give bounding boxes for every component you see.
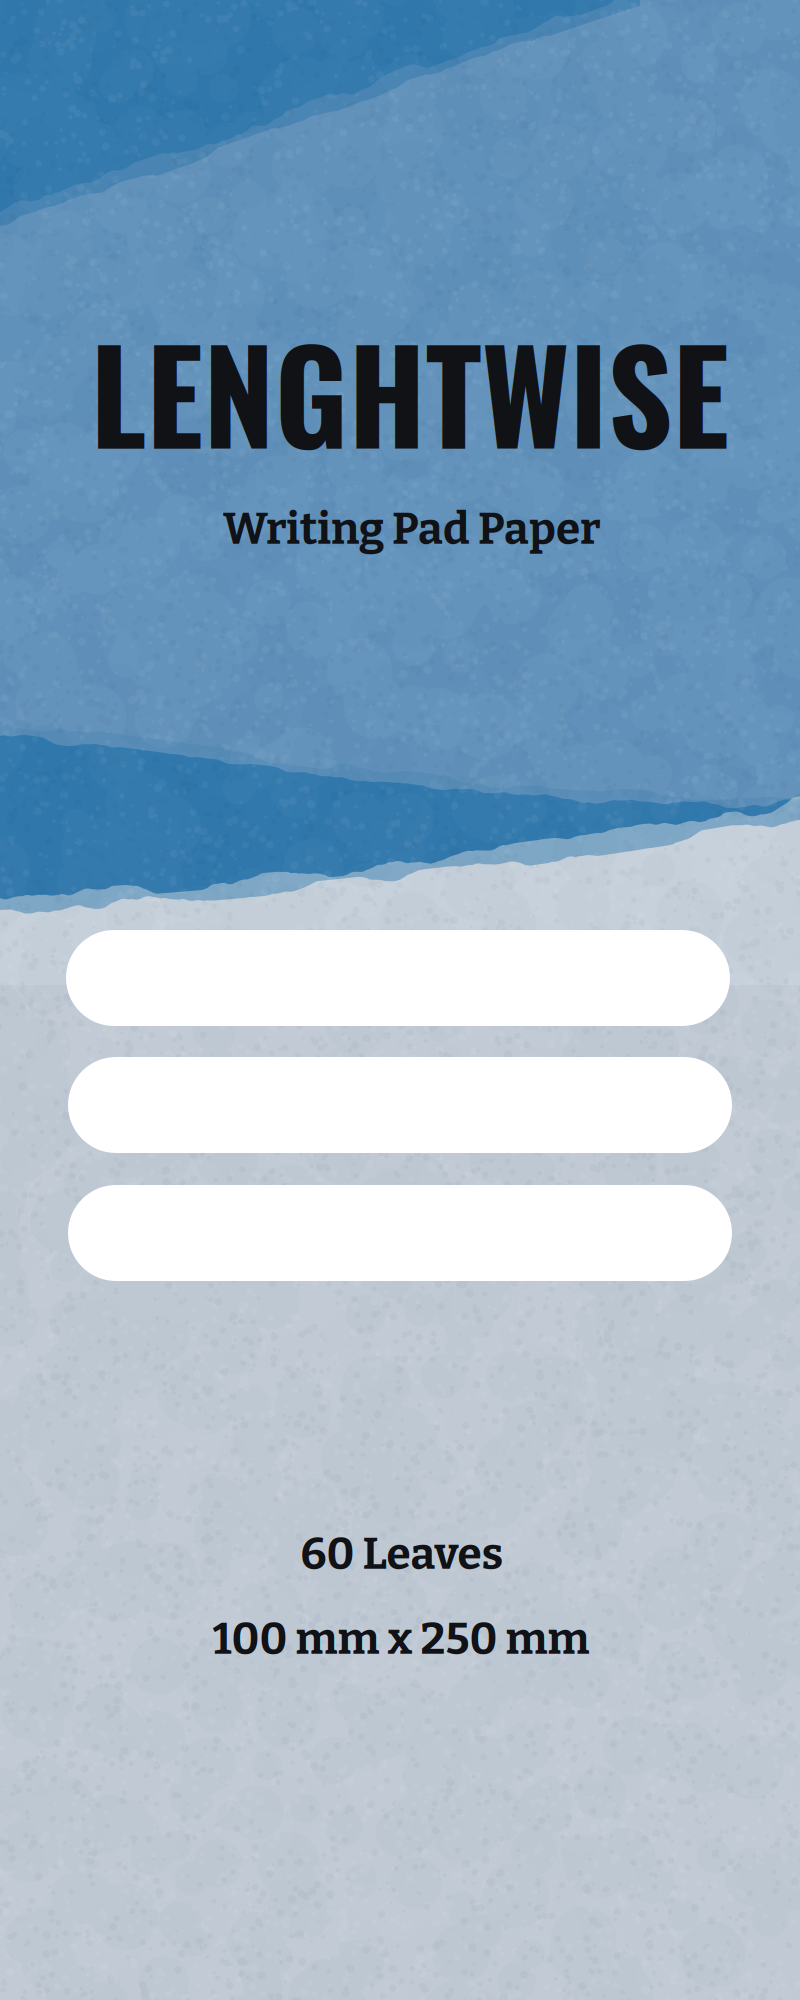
staticText: LENGHTWISE <box>90 297 729 485</box>
staticText: Writing Pad Paper <box>223 503 601 555</box>
staticText: 100 mm x 250 mm <box>212 1613 589 1665</box>
staticText: 60 Leaves <box>300 1528 503 1580</box>
